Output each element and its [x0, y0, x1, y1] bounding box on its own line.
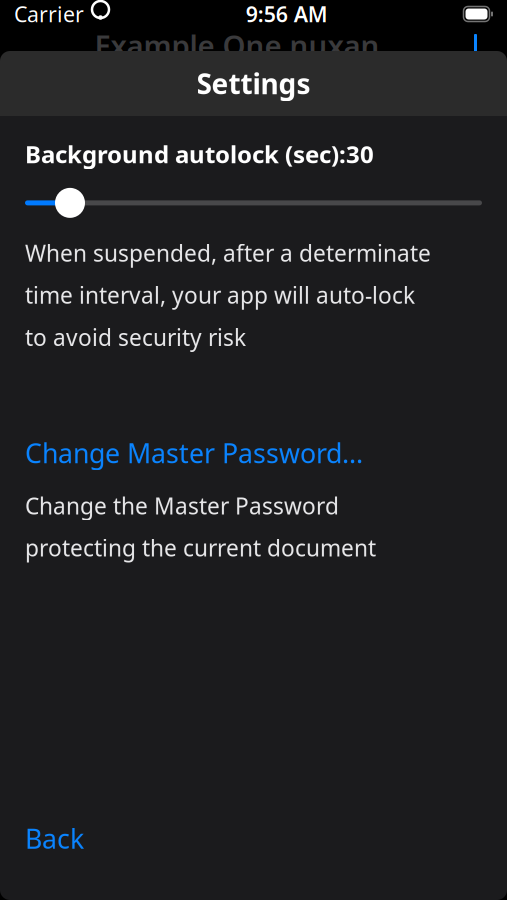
staticText: Carrier — [14, 0, 84, 28]
staticText: When suspended, after a determinate — [25, 238, 431, 268]
staticText: Settings — [196, 65, 310, 102]
staticText: time interval, your app will auto-lock — [25, 280, 415, 310]
button[interactable]: Back — [25, 813, 482, 864]
staticText: Back — [25, 821, 84, 856]
staticText: Change Master Password... — [25, 435, 363, 471]
staticText: 9:56 AM — [246, 0, 328, 28]
button[interactable]: Change Master Password... — [25, 429, 482, 477]
staticText: Change the Master Password — [25, 491, 339, 521]
staticText: protecting the current document — [25, 533, 376, 563]
staticText: Example One.nuxan — [94, 25, 379, 64]
staticText: to avoid security risk — [25, 322, 246, 352]
staticText: Background autolock (sec):30 — [25, 138, 374, 170]
